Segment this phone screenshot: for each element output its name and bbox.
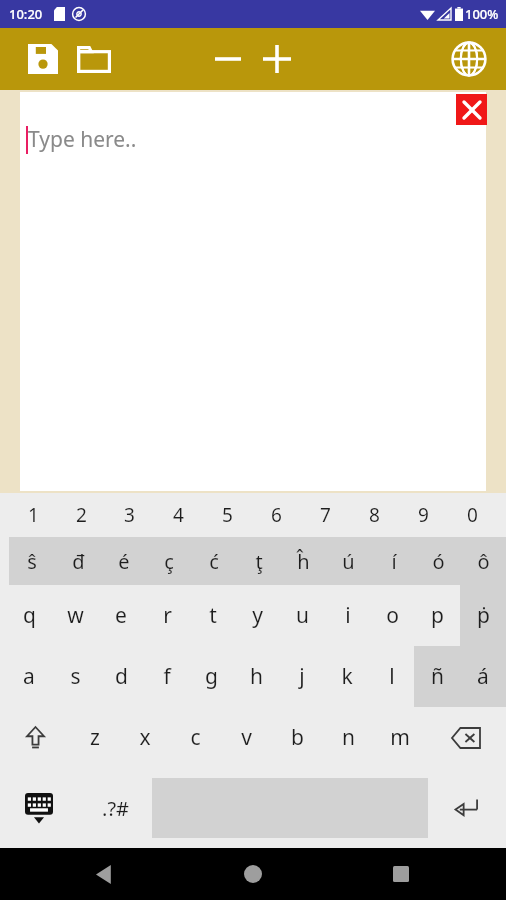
- button[interactable]: 0: [448, 493, 497, 537]
- button[interactable]: Enter: [428, 768, 506, 848]
- button[interactable]: Save: [22, 38, 64, 80]
- button[interactable]: e: [98, 585, 144, 646]
- button[interactable]: x: [120, 707, 170, 768]
- staticText: n: [342, 723, 355, 752]
- staticText: k: [341, 662, 353, 691]
- staticText: 1: [28, 502, 39, 528]
- button[interactable]: Decrease text size: [206, 37, 250, 81]
- button[interactable]: Increase text size: [255, 37, 299, 81]
- button[interactable]: ó: [416, 537, 461, 585]
- button[interactable]: ç: [146, 537, 191, 585]
- button[interactable]: a: [6, 646, 52, 707]
- button[interactable]: w: [52, 585, 98, 646]
- button[interactable]: z: [70, 707, 120, 768]
- staticText: í: [391, 548, 397, 575]
- button[interactable]: Backspace: [425, 707, 506, 768]
- staticText: y: [252, 601, 263, 630]
- button[interactable]: ŝ: [9, 537, 55, 585]
- staticText: ĥ: [297, 548, 310, 575]
- button[interactable]: 9: [399, 493, 448, 537]
- button[interactable]: Close: [456, 94, 487, 125]
- button[interactable]: á: [460, 646, 506, 707]
- staticText: a: [23, 662, 35, 691]
- button[interactable]: 5: [203, 493, 252, 537]
- button[interactable]: 2: [57, 493, 105, 537]
- button[interactable]: ô: [461, 537, 506, 585]
- button[interactable]: Home: [232, 853, 274, 895]
- button[interactable]: q: [6, 585, 52, 646]
- button[interactable]: j: [279, 646, 324, 707]
- button[interactable]: Type here..: [20, 92, 486, 491]
- staticText: 2: [76, 502, 87, 528]
- staticText: 10:20: [9, 5, 43, 23]
- button[interactable]: Shift: [0, 707, 70, 768]
- staticText: 5: [222, 502, 233, 528]
- button[interactable]: h: [234, 646, 279, 707]
- button[interactable]: d: [98, 646, 144, 707]
- button[interactable]: o: [370, 585, 415, 646]
- button[interactable]: l: [369, 646, 414, 707]
- button[interactable]: m: [374, 707, 425, 768]
- button[interactable]: ñ: [414, 646, 460, 707]
- staticText: q: [23, 601, 36, 630]
- staticText: ṗ: [477, 601, 490, 630]
- button[interactable]: 6: [252, 493, 301, 537]
- staticText: f: [163, 662, 171, 691]
- staticText: 6: [271, 502, 282, 528]
- button[interactable]: .?#: [78, 768, 152, 848]
- staticText: t: [209, 601, 217, 630]
- staticText: o: [386, 601, 399, 630]
- button[interactable]: k: [324, 646, 369, 707]
- button[interactable]: đ: [55, 537, 101, 585]
- staticText: 3: [124, 502, 135, 528]
- button[interactable]: 4: [154, 493, 203, 537]
- staticText: .?#: [102, 795, 129, 822]
- button[interactable]: 7: [301, 493, 350, 537]
- button[interactable]: i: [325, 585, 370, 646]
- button[interactable]: ṗ: [460, 585, 506, 646]
- button[interactable]: u: [280, 585, 325, 646]
- staticText: z: [90, 723, 100, 752]
- staticText: Type here..: [28, 125, 137, 154]
- button[interactable]: Back: [84, 853, 126, 895]
- button[interactable]: Recents: [380, 853, 422, 895]
- staticText: u: [296, 601, 309, 630]
- button[interactable]: c: [170, 707, 221, 768]
- button[interactable]: é: [101, 537, 146, 585]
- staticText: w: [67, 601, 84, 630]
- staticText: 0: [467, 502, 478, 528]
- staticText: ô: [477, 548, 490, 575]
- staticText: v: [241, 723, 252, 752]
- staticText: ó: [432, 548, 445, 575]
- button[interactable]: f: [144, 646, 189, 707]
- button[interactable]: í: [371, 537, 416, 585]
- staticText: l: [389, 662, 395, 691]
- button[interactable]: v: [221, 707, 272, 768]
- staticText: m: [390, 723, 410, 752]
- button[interactable]: b: [272, 707, 323, 768]
- button[interactable]: ć: [191, 537, 236, 585]
- button[interactable]: 3: [105, 493, 154, 537]
- staticText: g: [205, 662, 218, 691]
- button[interactable]: s: [52, 646, 98, 707]
- button[interactable]: ĥ: [281, 537, 326, 585]
- staticText: ţ: [255, 548, 263, 575]
- button[interactable]: p: [415, 585, 460, 646]
- button[interactable]: 1: [9, 493, 57, 537]
- staticText: d: [115, 662, 128, 691]
- button[interactable]: ú: [326, 537, 371, 585]
- button[interactable]: r: [144, 585, 190, 646]
- staticText: ú: [342, 548, 355, 575]
- staticText: đ: [72, 548, 85, 575]
- button[interactable]: 8: [350, 493, 399, 537]
- button[interactable]: Open: [72, 37, 116, 81]
- button[interactable]: t: [190, 585, 235, 646]
- button[interactable]: y: [235, 585, 280, 646]
- button[interactable]: g: [189, 646, 234, 707]
- button[interactable]: Translate: [446, 36, 492, 82]
- button[interactable]: Hide keyboard: [0, 768, 78, 848]
- button[interactable]: n: [323, 707, 374, 768]
- staticText: b: [291, 723, 304, 752]
- button[interactable]: ţ: [236, 537, 281, 585]
